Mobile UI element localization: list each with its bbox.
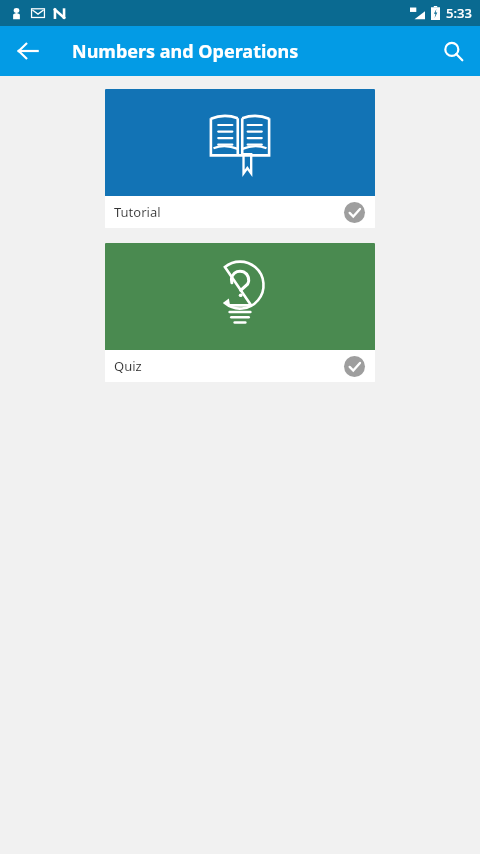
staticText: Numbers and Operations [72,39,299,64]
staticText: Tutorial [114,203,161,221]
other: Completed [344,356,365,377]
button[interactable]: Navigate up [8,31,48,71]
staticText: Quiz [114,357,142,375]
button[interactable]: Quiz [105,243,375,382]
staticText: 5:33 [446,4,472,22]
other: Completed [344,202,365,223]
button[interactable]: Tutorial [105,89,375,228]
button[interactable]: Search [432,30,474,72]
